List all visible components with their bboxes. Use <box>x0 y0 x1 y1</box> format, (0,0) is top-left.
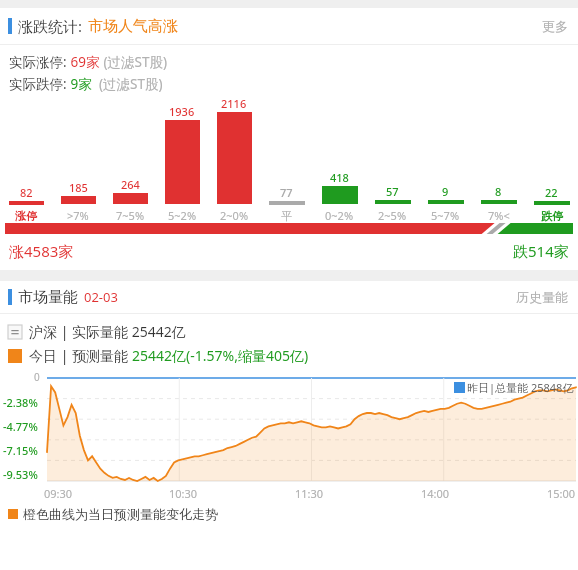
staticText: 平 <box>281 209 292 223</box>
staticText: 185 <box>69 180 88 195</box>
staticText: 11:30 <box>295 486 324 501</box>
staticText: 2116 <box>221 96 247 111</box>
button[interactable]: 8 <box>472 95 525 223</box>
staticText: 0~2% <box>325 208 354 223</box>
staticText: 02-03 <box>84 288 118 306</box>
staticText: 25442亿(-1.57%,缩量405亿) <box>132 346 309 365</box>
button[interactable]: 涨跌统计: <box>0 8 578 44</box>
staticText: 2~5% <box>378 208 407 223</box>
staticText: 77 <box>280 185 293 200</box>
staticText: -9.53% <box>3 467 38 482</box>
staticText: 实际跌停: <box>9 75 67 93</box>
staticText: 1936 <box>169 104 195 119</box>
staticText: 8 <box>495 184 502 199</box>
staticText: 09:30 <box>44 486 73 501</box>
button[interactable]: 2116 <box>208 95 260 223</box>
button[interactable]: 82 <box>0 95 52 223</box>
button[interactable]: 57 <box>366 95 419 223</box>
staticText: 418 <box>330 170 349 185</box>
staticText: 涨4583家 <box>9 241 74 261</box>
staticText: 市场量能 <box>18 288 78 307</box>
staticText: 69家 <box>67 53 100 71</box>
button[interactable]: 77 <box>260 95 313 223</box>
staticText: 实际涨停: <box>9 53 67 71</box>
other: Market selector <box>8 325 22 339</box>
staticText: -4.77% <box>3 419 38 434</box>
staticText: 7~5% <box>116 208 145 223</box>
button[interactable]: 市场量能 <box>0 281 578 313</box>
staticText: 57 <box>386 184 399 199</box>
button[interactable]: 185 <box>52 95 104 223</box>
staticText: -2.38% <box>3 395 38 410</box>
staticText: 10:30 <box>169 486 198 501</box>
staticText: 沪深 | 实际量能 25442亿 <box>29 322 186 341</box>
staticText: 历史量能 <box>516 289 568 305</box>
staticText: 9家 <box>67 75 92 93</box>
staticText: 橙色曲线为当日预测量能变化走势 <box>23 506 218 522</box>
staticText: 14:00 <box>421 486 450 501</box>
staticText: 涨停 <box>15 209 37 223</box>
staticText: >7% <box>67 208 89 223</box>
staticText: 22 <box>545 185 558 200</box>
staticText: 7%< <box>488 208 510 223</box>
staticText: -7.15% <box>3 443 38 458</box>
button[interactable]: 264 <box>104 95 156 223</box>
button[interactable]: 22 <box>525 95 578 223</box>
staticText: 2~0% <box>220 208 249 223</box>
staticText: 跌514家 <box>513 241 569 261</box>
staticText: (过滤ST股) <box>100 53 168 71</box>
staticText: 昨日|总量能 25848亿 <box>467 380 574 395</box>
staticText: 15:00 <box>547 486 576 501</box>
staticText: 5~2% <box>168 208 197 223</box>
staticText: 更多 <box>542 18 568 34</box>
staticText: 0 <box>34 370 40 384</box>
staticText: 涨跌统计: <box>18 16 83 36</box>
staticText: (过滤ST股) <box>92 75 163 93</box>
staticText: 跌停 <box>541 209 563 223</box>
staticText: 9 <box>442 184 449 199</box>
staticText: 今日 | 预测量能 <box>29 346 132 365</box>
button[interactable]: 1936 <box>156 95 208 223</box>
staticText: 264 <box>121 177 140 192</box>
button[interactable]: Market selector <box>8 322 186 341</box>
button[interactable]: 9 <box>419 95 472 223</box>
button[interactable]: 418 <box>313 95 366 223</box>
staticText: 82 <box>20 185 33 200</box>
staticText: 5~7% <box>431 208 460 223</box>
staticText: 市场人气高涨 <box>88 17 178 36</box>
